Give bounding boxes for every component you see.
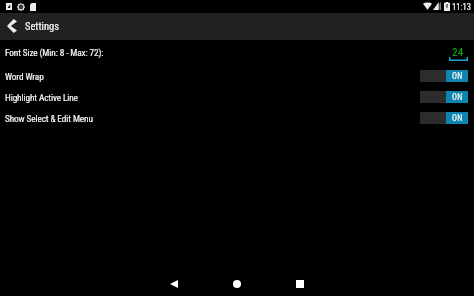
staticText: Settings	[25, 20, 60, 32]
button[interactable]: Back	[2, 12, 22, 39]
button[interactable]: Show Select & Edit Menu	[0, 108, 474, 129]
button[interactable]: Word Wrap	[0, 66, 474, 87]
staticText: Show Select & Edit Menu	[5, 113, 93, 124]
staticText: ON	[452, 92, 463, 102]
staticText: ON	[452, 113, 463, 123]
button[interactable]: Back	[158, 268, 188, 296]
staticText: 11:13	[452, 2, 471, 12]
staticText: Highlight Active Line	[5, 92, 78, 103]
staticText: 24	[452, 46, 464, 59]
staticText: Font Size (Min: 8 - Max: 72):	[5, 47, 104, 58]
staticText: Word Wrap	[5, 71, 44, 82]
button[interactable]: Recents	[285, 268, 315, 296]
button[interactable]: Home	[222, 268, 252, 296]
button[interactable]: Font Size (Min: 8 - Max: 72):	[0, 41, 474, 63]
button[interactable]: Highlight Active Line	[0, 87, 474, 108]
staticText: ON	[452, 71, 463, 81]
